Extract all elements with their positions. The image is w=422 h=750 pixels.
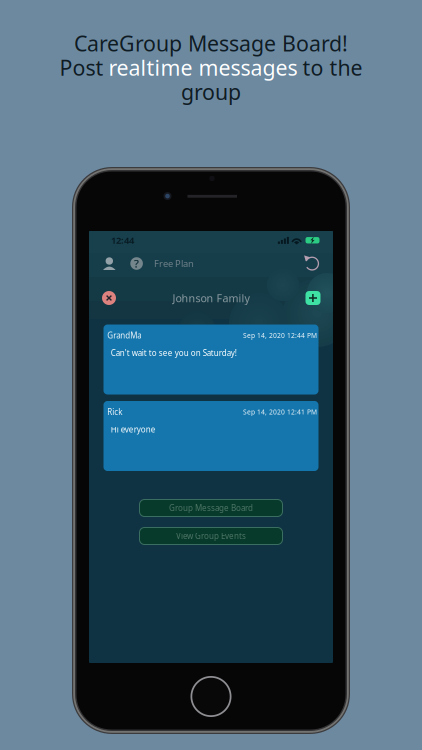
button[interactable]: Account — [103, 257, 116, 270]
staticText: Sep 14, 2020 12:41 PM — [243, 407, 317, 416]
staticText: Can't wait to see you on Saturday! — [111, 348, 237, 358]
staticText: realtime messages — [108, 53, 297, 82]
staticText: Free Plan — [154, 257, 194, 270]
button[interactable]: Close — [101, 290, 117, 306]
staticText: View Group Events — [176, 531, 246, 541]
button[interactable]: Rick — [103, 401, 318, 471]
button[interactable]: History — [303, 255, 320, 272]
button[interactable]: GrandMa — [103, 324, 318, 394]
button[interactable]: View Group Events — [139, 527, 282, 544]
button[interactable]: Help — [130, 257, 143, 270]
staticText: Hi everyone — [111, 424, 156, 435]
staticText: Johnson Family — [172, 291, 249, 305]
staticText: CareGroup Message Board! — [74, 29, 348, 57]
button[interactable]: Home — [189, 674, 233, 718]
staticText: Sep 14, 2020 12:44 PM — [243, 331, 317, 340]
staticText: Post — [59, 53, 103, 82]
staticText: ? — [134, 256, 139, 271]
staticText: Group Message Board — [169, 503, 253, 513]
staticText: 12:44 — [111, 234, 134, 246]
staticText: GrandMa — [107, 330, 141, 341]
staticText: group — [181, 78, 241, 106]
button[interactable]: Group Message Board — [139, 499, 282, 516]
staticText: to the — [302, 53, 362, 82]
button[interactable]: Add — [305, 290, 321, 306]
staticText: Rick — [107, 406, 122, 417]
